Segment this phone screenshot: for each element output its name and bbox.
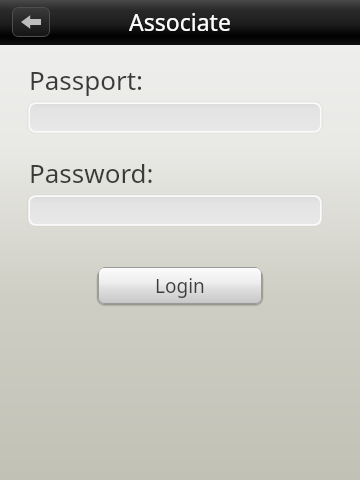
staticText: Associate: [0, 6, 360, 37]
staticText: Password:: [29, 155, 154, 190]
staticText: Passport:: [29, 62, 144, 97]
staticText: Login: [155, 273, 205, 299]
button[interactable]: Back: [12, 7, 50, 37]
button[interactable]: Login: [98, 267, 262, 304]
